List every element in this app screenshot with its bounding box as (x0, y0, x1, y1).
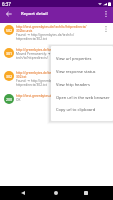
button[interactable]: 302 (0, 69, 113, 92)
staticText: Moved Permanently: ➔ http://greenbytes.d… (16, 52, 89, 60)
staticText: 302 (6, 74, 13, 79)
staticText: http://greenbytes.de/tech/tc/httpredirec… (16, 71, 89, 79)
staticText: 6:37 (2, 1, 11, 7)
staticText: View url properties (56, 56, 92, 61)
staticText: 301 (6, 51, 13, 56)
staticText: 200 (6, 97, 13, 102)
staticText: Open url in the web browser (56, 95, 110, 100)
button[interactable]: 301 (0, 46, 113, 69)
button[interactable]: More options (99, 7, 113, 20)
staticText: View response status (56, 69, 96, 74)
button[interactable]: Navigate up (0, 7, 18, 20)
staticText: Copy url to clipboard (56, 107, 96, 112)
button[interactable]: Recent apps (79, 186, 93, 200)
button[interactable]: Row options (89, 94, 113, 107)
button[interactable]: Back (16, 186, 30, 200)
staticText: Found: ➔ http://greenbytes.de/tech/tc/ht… (16, 33, 89, 41)
button[interactable]: Copy url to clipboard (51, 104, 113, 115)
button[interactable]: View url properties (51, 52, 113, 65)
button[interactable]: Row options (89, 48, 113, 61)
button[interactable]: View response status (51, 65, 113, 78)
staticText: 502 (6, 28, 13, 33)
button[interactable]: View http headers (51, 78, 113, 91)
button[interactable]: Row options (89, 25, 113, 38)
button[interactable]: 502 (0, 23, 113, 46)
staticText: OK (16, 98, 21, 102)
button[interactable]: 200 (0, 92, 113, 115)
staticText: Found: ➔ http://greenbytes.de/tech/tc/ht… (16, 79, 89, 87)
button[interactable]: Row options (89, 71, 113, 84)
staticText: View http headers (56, 82, 90, 87)
staticText: http://test.greenbytes.de/tech/tc/httpre… (16, 25, 89, 33)
staticText: http://greenbytes.de/tech/tc/httpredirec… (16, 48, 81, 52)
staticText: http://test.greenbytes.de/tech/tc/httpre… (16, 94, 87, 98)
staticText: Report detail (21, 10, 48, 16)
button[interactable]: Open url in the web browser (51, 91, 113, 104)
button[interactable]: Home (49, 186, 63, 200)
